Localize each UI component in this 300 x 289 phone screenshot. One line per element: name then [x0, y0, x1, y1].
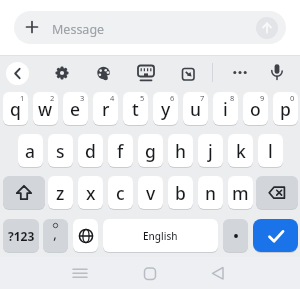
- staticText: k: [236, 139, 246, 163]
- button[interactable]: m: [228, 176, 253, 209]
- button[interactable]: b: [168, 176, 193, 209]
- staticText: y: [161, 97, 171, 121]
- staticText: 8: [230, 93, 235, 103]
- button[interactable]: e: [63, 92, 88, 125]
- button[interactable]: [264, 60, 290, 86]
- button[interactable]: o: [243, 92, 268, 125]
- button[interactable]: a: [18, 134, 43, 167]
- button[interactable]: p: [273, 92, 298, 125]
- staticText: ?123: [8, 228, 35, 244]
- staticText: a: [25, 139, 36, 163]
- staticText: t: [132, 97, 139, 121]
- staticText: e: [70, 97, 81, 121]
- staticText: 0: [290, 93, 295, 103]
- staticText: x: [86, 181, 96, 205]
- button[interactable]: n: [198, 176, 223, 209]
- staticText: s: [56, 139, 65, 163]
- button[interactable]: [91, 60, 117, 86]
- button[interactable]: g: [138, 134, 163, 167]
- staticText: 4: [110, 93, 115, 103]
- button[interactable]: [136, 262, 164, 284]
- staticText: j: [208, 139, 213, 163]
- staticText: h: [175, 139, 186, 163]
- button[interactable]: d: [78, 134, 103, 167]
- button[interactable]: [3, 176, 45, 209]
- button[interactable]: [256, 17, 278, 39]
- staticText: v: [146, 181, 156, 205]
- staticText: f: [117, 139, 124, 163]
- staticText: b: [175, 181, 186, 205]
- button[interactable]: h: [168, 134, 193, 167]
- staticText: i: [223, 97, 228, 121]
- staticText: 2: [50, 93, 55, 103]
- staticText: n: [205, 181, 216, 205]
- staticText: 6: [170, 93, 175, 103]
- staticText: c: [116, 181, 125, 205]
- staticText: l: [268, 139, 273, 163]
- button[interactable]: ,: [43, 219, 68, 252]
- staticText: q: [10, 97, 21, 121]
- button[interactable]: u: [183, 92, 208, 125]
- staticText: d: [85, 139, 96, 163]
- button[interactable]: [66, 262, 94, 284]
- button[interactable]: ?123: [3, 219, 39, 252]
- button[interactable]: c: [108, 176, 133, 209]
- button[interactable]: [256, 176, 298, 209]
- button[interactable]: v: [138, 176, 163, 209]
- staticText: 5: [140, 93, 145, 103]
- button[interactable]: [14, 11, 286, 44]
- button[interactable]: j: [198, 134, 223, 167]
- button[interactable]: [223, 219, 248, 252]
- button[interactable]: l: [258, 134, 283, 167]
- button[interactable]: [175, 60, 201, 86]
- staticText: English: [143, 229, 178, 243]
- staticText: 7: [200, 93, 205, 103]
- button[interactable]: w: [33, 92, 58, 125]
- button[interactable]: English: [103, 219, 218, 252]
- staticText: 9: [260, 93, 265, 103]
- button[interactable]: f: [108, 134, 133, 167]
- staticText: w: [38, 97, 53, 121]
- button[interactable]: t: [123, 92, 148, 125]
- staticText: 1: [20, 93, 25, 103]
- button[interactable]: s: [48, 134, 73, 167]
- staticText: ,: [53, 223, 58, 243]
- button[interactable]: k: [228, 134, 253, 167]
- button[interactable]: [133, 60, 159, 86]
- button[interactable]: z: [48, 176, 73, 209]
- button[interactable]: i: [213, 92, 238, 125]
- staticText: Message: [52, 21, 105, 38]
- staticText: p: [280, 97, 291, 121]
- staticText: o: [250, 97, 261, 121]
- button[interactable]: [73, 219, 98, 252]
- button[interactable]: [49, 60, 75, 86]
- button[interactable]: [253, 219, 298, 252]
- button[interactable]: x: [78, 176, 103, 209]
- button[interactable]: y: [153, 92, 178, 125]
- staticText: z: [56, 181, 65, 205]
- staticText: u: [190, 97, 201, 121]
- button[interactable]: r: [93, 92, 118, 125]
- button[interactable]: q: [3, 92, 28, 125]
- staticText: m: [232, 181, 249, 205]
- staticText: g: [145, 139, 156, 163]
- button[interactable]: [6, 62, 29, 85]
- staticText: 3: [80, 93, 85, 103]
- staticText: r: [102, 97, 110, 121]
- button[interactable]: [227, 60, 253, 86]
- button[interactable]: [206, 262, 234, 284]
